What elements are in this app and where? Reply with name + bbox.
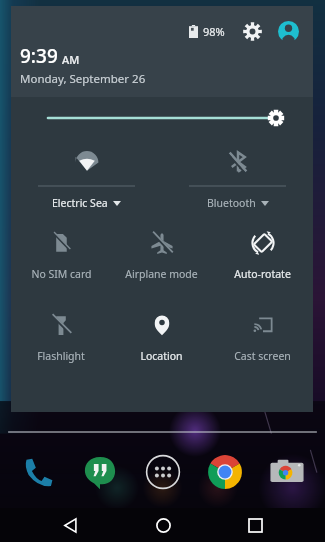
button[interactable]: Electric Sea bbox=[11, 139, 162, 217]
staticText: Airplane mode bbox=[125, 267, 198, 281]
staticText: Bluetooth bbox=[207, 196, 256, 210]
button[interactable]: Home bbox=[140, 508, 186, 542]
staticText: 9:39 bbox=[20, 43, 58, 69]
staticText: Monday, September 26 bbox=[20, 71, 146, 87]
button[interactable]: Brightness bbox=[11, 97, 313, 139]
staticText: No SIM card bbox=[31, 267, 92, 281]
button[interactable]: Location bbox=[111, 299, 212, 381]
staticText: Location bbox=[140, 349, 183, 363]
button[interactable]: Bluetooth bbox=[162, 139, 313, 217]
button[interactable]: Back bbox=[47, 508, 93, 542]
button[interactable]: Chrome bbox=[201, 448, 249, 496]
button[interactable]: Camera bbox=[263, 448, 311, 496]
staticText: Auto-rotate bbox=[234, 267, 291, 281]
staticText: Cast screen bbox=[234, 349, 291, 363]
button[interactable]: Settings bbox=[239, 18, 265, 44]
staticText: Flashlight bbox=[37, 349, 85, 363]
staticText: 98% bbox=[203, 24, 225, 39]
button[interactable]: Hangouts bbox=[76, 448, 124, 496]
button[interactable]: Auto-rotate bbox=[212, 217, 313, 299]
button[interactable]: Phone bbox=[14, 448, 62, 496]
button[interactable]: Airplane mode bbox=[111, 217, 212, 299]
staticText: AM bbox=[62, 52, 80, 67]
button[interactable]: All apps bbox=[139, 448, 187, 496]
button[interactable]: Flashlight bbox=[11, 299, 111, 381]
staticText: Electric Sea bbox=[52, 196, 108, 210]
button[interactable]: Recent apps bbox=[232, 508, 278, 542]
button[interactable]: User profile bbox=[275, 18, 301, 44]
button[interactable]: Cast screen bbox=[212, 299, 313, 381]
button[interactable]: No SIM card bbox=[11, 217, 111, 299]
